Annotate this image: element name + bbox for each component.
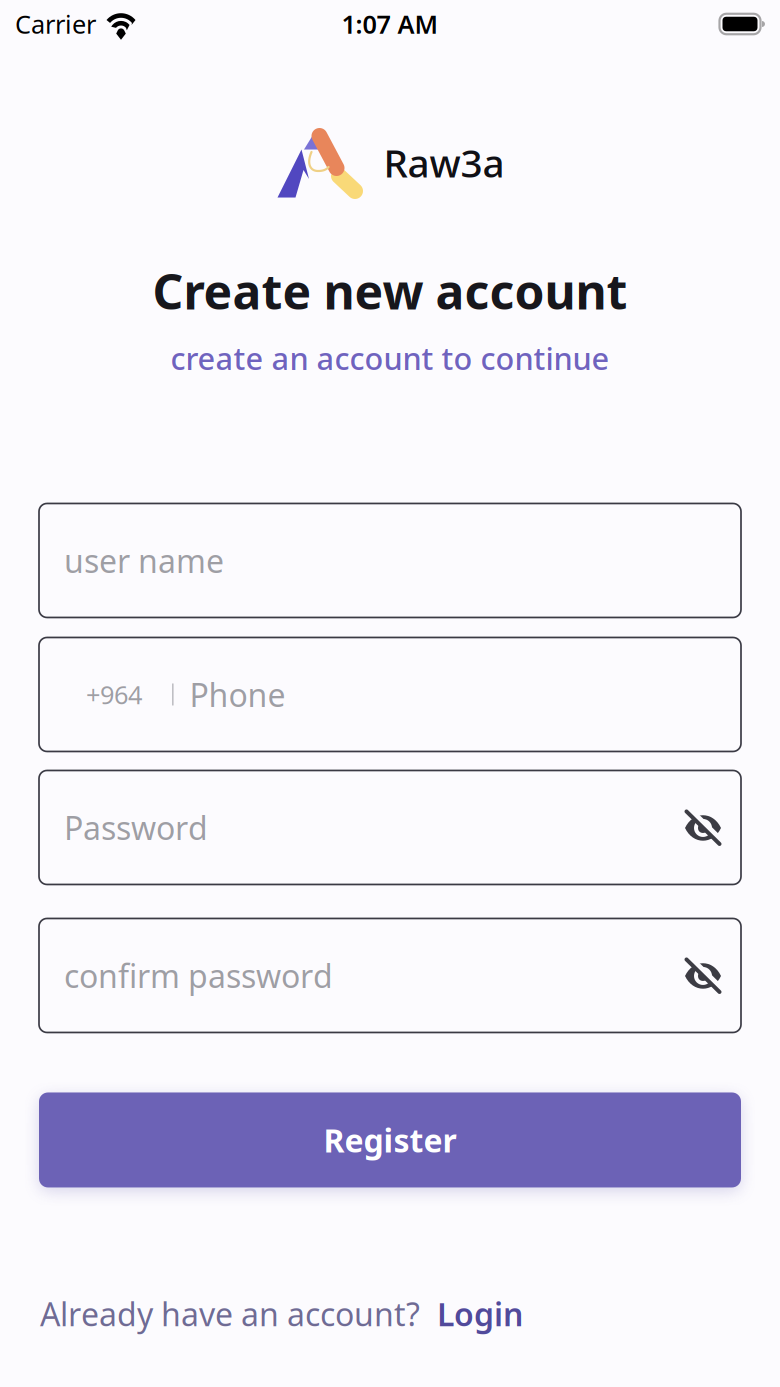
button[interactable]: Login (437, 1292, 523, 1335)
staticText: +964 (86, 678, 142, 711)
button[interactable]: Register (39, 1092, 741, 1187)
staticText: confirm password (64, 954, 333, 997)
staticText: create an account to continue (170, 338, 609, 378)
button[interactable]: confirm password (39, 918, 741, 1032)
staticText: Raw3a (383, 137, 504, 188)
button[interactable]: user name (39, 503, 741, 617)
staticText: user name (64, 539, 224, 582)
staticText: Register (323, 1119, 456, 1161)
staticText: Phone (190, 673, 286, 716)
button[interactable]: Phone (39, 637, 741, 751)
staticText: Password (64, 806, 208, 849)
button[interactable]: Show password (661, 770, 741, 884)
button[interactable]: Password (39, 770, 741, 884)
staticText: Already have an account? (40, 1292, 420, 1335)
button[interactable]: Show confirm password (661, 918, 741, 1032)
staticText: Create new account (152, 259, 627, 323)
staticText: Carrier (15, 7, 96, 41)
staticText: Login (437, 1292, 523, 1335)
staticText: 1:07 AM (341, 7, 438, 41)
